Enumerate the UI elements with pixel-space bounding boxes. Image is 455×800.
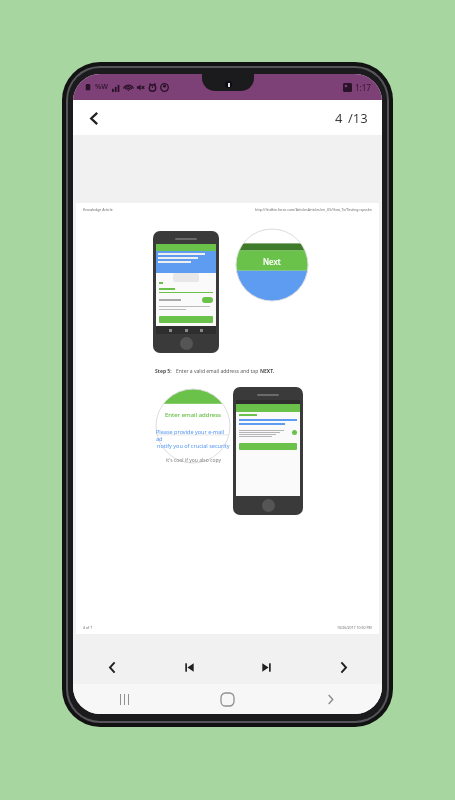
button[interactable]: Skip to start	[151, 650, 228, 684]
button[interactable]: Back	[77, 101, 111, 135]
staticText: /13	[348, 109, 368, 127]
button[interactable]: Back	[279, 684, 382, 714]
button[interactable]: Skip to end	[228, 650, 305, 684]
staticText: 1:17	[355, 82, 371, 93]
button[interactable]: Recents	[73, 684, 176, 714]
staticText: Please provide your e-mail ad	[156, 428, 230, 442]
staticText: it's cool if you also copy	[166, 457, 221, 463]
button[interactable]: Previous page	[73, 650, 151, 684]
staticText: Enter a valid email address and tap	[176, 368, 260, 375]
staticText: Knowledge Article	[83, 207, 113, 212]
staticText: 4	[335, 109, 343, 127]
staticText: %W	[95, 82, 109, 92]
button[interactable]: 4	[335, 109, 368, 127]
staticText: 10/26/2017 10:50 PM	[337, 625, 372, 630]
staticText: 4 of 7	[83, 625, 93, 630]
button[interactable]: Next page	[305, 650, 382, 684]
staticText: Step 5:	[155, 368, 172, 375]
button[interactable]: Home	[176, 684, 279, 714]
staticText: notify you of crucial security	[157, 442, 230, 449]
staticText: Next	[263, 256, 281, 267]
staticText: http://findhin.force.com/ArticlesArticle…	[255, 207, 372, 212]
staticText: NEXT.	[260, 368, 275, 375]
staticText: Enter email address	[165, 411, 221, 419]
button[interactable]: Knowledge Article	[76, 203, 379, 634]
